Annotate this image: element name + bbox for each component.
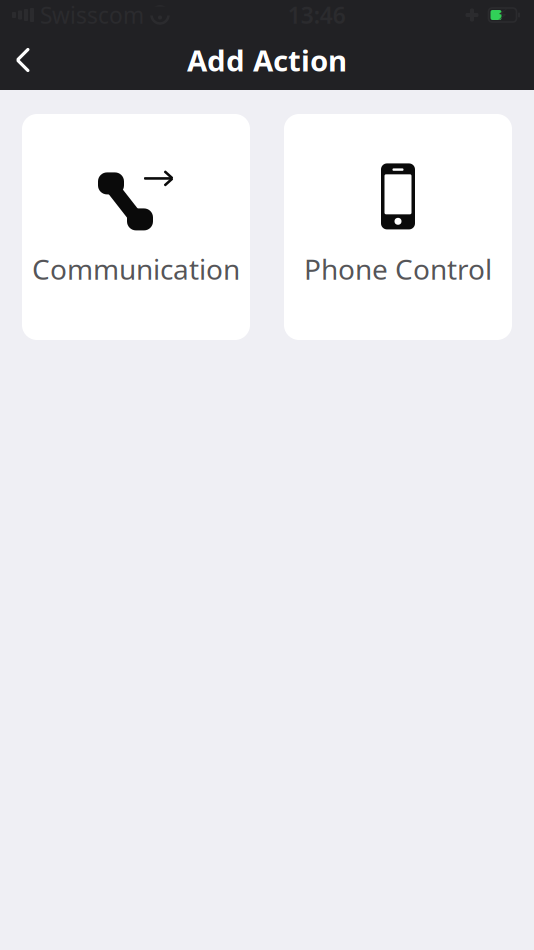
staticText: 13:46 xyxy=(288,0,346,30)
button[interactable]: Communication xyxy=(22,114,250,340)
button[interactable]: Back xyxy=(0,30,46,90)
staticText: ⚡︎ xyxy=(497,6,508,24)
staticText: Communication xyxy=(32,250,240,288)
staticText: Phone Control xyxy=(304,250,492,288)
button[interactable]: Phone Control xyxy=(284,114,512,340)
staticText: Add Action xyxy=(187,40,347,79)
staticText: Swisscom xyxy=(40,0,144,30)
